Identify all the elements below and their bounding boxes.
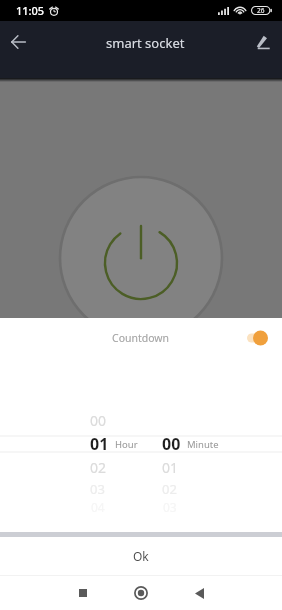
button[interactable]: Countdown switch	[246, 327, 274, 349]
staticText: 01	[90, 433, 109, 455]
button[interactable]: Back	[182, 577, 216, 609]
button[interactable]: 00	[0, 358, 282, 533]
button[interactable]: Back	[0, 24, 36, 60]
staticText: 00	[90, 411, 107, 430]
staticText: 01	[162, 458, 179, 477]
staticText: Countdown	[112, 331, 170, 345]
staticText: 00	[162, 433, 181, 455]
staticText: Minute	[187, 438, 219, 451]
staticText: smart socket	[106, 34, 185, 52]
staticText: 03	[90, 480, 105, 498]
button[interactable]: Ok	[0, 537, 282, 575]
button[interactable]: Edit name	[244, 24, 280, 60]
button[interactable]: Countdown	[0, 318, 282, 358]
staticText: 04	[91, 499, 105, 515]
staticText: 26	[257, 6, 265, 15]
staticText: 11:05	[16, 3, 45, 18]
staticText: Ok	[133, 548, 149, 564]
staticText: Hour	[115, 438, 138, 451]
button[interactable]: Home	[124, 577, 158, 609]
staticText: 02	[162, 480, 177, 498]
button[interactable]: Recents	[66, 577, 100, 609]
staticText: 03	[163, 499, 177, 515]
staticText: 02	[90, 458, 107, 477]
